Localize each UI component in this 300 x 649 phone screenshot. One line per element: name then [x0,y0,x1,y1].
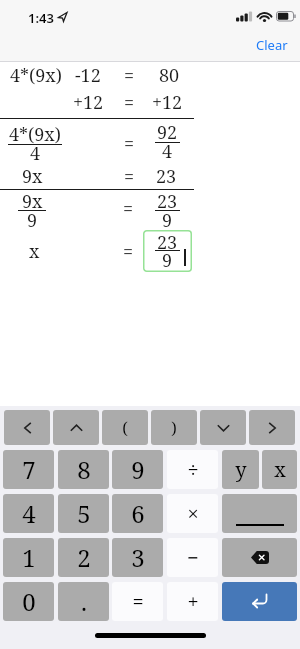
staticText: = [123,239,134,264]
button[interactable]: x [262,450,297,489]
button[interactable]: 0 [3,582,54,621]
staticText: = [124,90,135,115]
staticText: x [29,239,40,264]
staticText: ) [171,417,177,439]
staticText: = [124,131,135,156]
staticText: 9x [22,164,43,189]
button[interactable]: + [167,582,218,621]
staticText: 0 [22,585,36,618]
staticText: 23 [157,189,178,214]
button[interactable] [200,410,246,445]
button[interactable]: ÷ [167,450,218,489]
staticText: 2 [77,541,91,574]
staticText: 1 [22,541,36,574]
staticText: 23 [156,164,177,189]
staticText: 92 [157,120,178,145]
button[interactable]: 1 [3,538,54,577]
staticText: × [187,500,199,527]
button[interactable] [143,230,192,272]
staticText: + [187,588,199,615]
staticText: = [132,588,144,615]
button[interactable]: ) [151,410,197,445]
button[interactable]: 9 [112,450,163,489]
staticText: 4*(9x) [9,122,61,147]
staticText: 9 [162,208,173,233]
staticText: 4 [162,139,173,164]
staticText: ÷ [187,456,199,483]
staticText: − [187,544,199,571]
button[interactable] [222,582,297,621]
staticText: 23 [157,230,178,255]
button[interactable]: 5 [58,494,109,533]
staticText: 8 [77,453,91,486]
button[interactable]: − [167,538,218,577]
staticText: 7 [22,453,36,486]
staticText: 4 [22,497,36,530]
staticText: 9 [162,248,173,273]
button[interactable] [4,410,50,445]
button[interactable]: 6 [112,494,163,533]
button[interactable]: y [222,450,259,489]
button[interactable]: 7 [3,450,54,489]
staticText: 80 [159,63,180,88]
button[interactable]: 8 [58,450,109,489]
staticText: = [124,164,135,189]
button[interactable] [249,410,295,445]
staticText: y [235,456,247,483]
button[interactable]: × [167,494,218,533]
staticText: +12 [73,90,104,115]
staticText: 1:43 [28,9,54,27]
button[interactable]: Clear [252,32,292,58]
button[interactable]: ( [102,410,148,445]
button[interactable]: 3 [112,538,163,577]
staticText: +12 [152,90,183,115]
staticText: 9 [131,453,145,486]
staticText: 9 [27,208,38,233]
button[interactable]: = [112,582,163,621]
button[interactable]: 4 [3,494,54,533]
staticText: 4*(9x) [10,63,62,88]
staticText: = [123,196,134,221]
button[interactable]: 2 [58,538,109,577]
staticText: 3 [131,541,145,574]
button[interactable]: . [58,582,109,621]
button[interactable] [222,538,297,577]
staticText: -12 [75,63,101,88]
staticText: 9x [22,189,43,214]
button[interactable] [53,410,99,445]
staticText: ( [122,417,128,439]
staticText: 4 [30,141,41,166]
staticText: x [274,456,286,483]
button[interactable] [222,494,297,533]
staticText: . [81,585,87,618]
staticText: 5 [77,497,91,530]
staticText: 6 [131,497,145,530]
staticText: Clear [256,36,288,54]
staticText: = [124,63,135,88]
